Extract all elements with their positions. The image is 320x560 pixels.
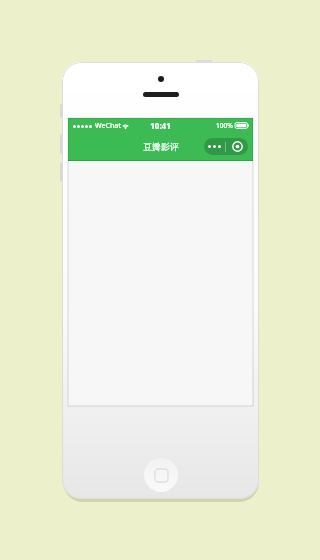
button[interactable]: Home xyxy=(144,458,178,492)
button[interactable]: Close mini program xyxy=(226,138,248,155)
staticText: 10:41 xyxy=(150,120,171,131)
staticText: WeChat xyxy=(95,121,121,131)
staticText: 100% xyxy=(216,121,233,130)
button[interactable]: More options xyxy=(204,138,225,155)
staticText: 豆瓣影评 xyxy=(143,141,179,152)
